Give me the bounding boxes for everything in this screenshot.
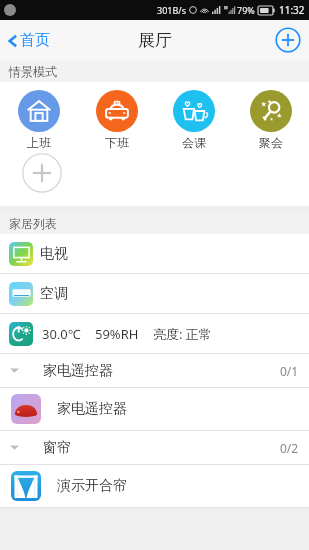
staticText: 家电遥控器 xyxy=(57,400,127,418)
button[interactable]: 30.0℃ xyxy=(0,314,309,353)
staticText: 59%RH xyxy=(95,325,139,343)
button[interactable]: 空调 xyxy=(0,274,309,313)
staticText: 情景模式 xyxy=(9,64,57,79)
button[interactable]: 演示开合帘 xyxy=(0,465,309,507)
staticText: 家电遥控器 xyxy=(43,362,113,380)
button[interactable]: 家电遥控器 xyxy=(0,354,309,387)
staticText: 30.0℃ xyxy=(42,325,81,343)
staticText: 0/1 xyxy=(280,363,299,379)
button[interactable]: Add scene xyxy=(22,153,62,193)
staticText: 展厅 xyxy=(138,30,172,51)
button[interactable]: 窗帘 xyxy=(0,431,309,464)
staticText: 聚会 xyxy=(259,135,283,150)
button[interactable]: 家电遥控器 xyxy=(0,388,309,430)
button[interactable]: Add xyxy=(275,27,301,53)
staticText: 上班 xyxy=(27,135,51,150)
staticText: 79% xyxy=(237,4,255,16)
staticText: 301B/s xyxy=(157,4,186,16)
staticText: 会课 xyxy=(182,135,206,150)
staticText: 首页 xyxy=(20,31,50,50)
button[interactable]: 下班 xyxy=(78,90,155,150)
staticText: 0/2 xyxy=(280,440,299,456)
button[interactable]: 电视 xyxy=(0,234,309,273)
button[interactable]: 上班 xyxy=(0,90,78,150)
staticText: 电视 xyxy=(40,245,68,263)
staticText: 窗帘 xyxy=(43,439,71,457)
staticText: 空调 xyxy=(40,285,68,303)
button[interactable]: 会课 xyxy=(155,90,232,150)
staticText: 演示开合帘 xyxy=(57,477,127,495)
button[interactable]: 首页 xyxy=(0,25,58,56)
button[interactable]: 聚会 xyxy=(232,90,309,150)
staticText: 11:32 xyxy=(279,3,305,17)
staticText: 下班 xyxy=(105,135,129,150)
staticText: 亮度: 正常 xyxy=(153,325,212,343)
staticText: 家居列表 xyxy=(9,216,57,231)
